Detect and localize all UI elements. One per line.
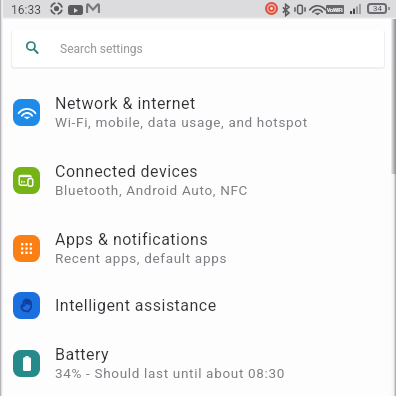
staticText: Recent apps, default apps xyxy=(55,250,228,266)
staticText: Network & internet xyxy=(55,94,196,113)
staticText: Search settings xyxy=(60,42,143,56)
button[interactable]: Search settings xyxy=(12,30,384,67)
button[interactable]: Intelligent assistance xyxy=(0,282,396,329)
staticText: Battery xyxy=(55,345,110,364)
staticText: 34 xyxy=(373,4,382,13)
button[interactable]: Apps & notifications xyxy=(0,214,396,282)
button[interactable]: Connected devices xyxy=(0,146,396,214)
staticText: Wi-Fi, mobile, data usage, and hotspot xyxy=(55,114,308,130)
button[interactable]: Battery xyxy=(0,329,396,396)
staticText: Connected devices xyxy=(55,162,199,181)
staticText: Apps & notifications xyxy=(55,230,209,249)
staticText: 34% - Should last until about 08:30 xyxy=(55,365,285,381)
button[interactable]: Network & internet xyxy=(0,78,396,146)
staticText: VoWiFi xyxy=(327,7,343,13)
staticText: 16:33 xyxy=(11,3,41,17)
staticText: Intelligent assistance xyxy=(55,296,217,315)
staticText: Bluetooth, Android Auto, NFC xyxy=(55,182,249,198)
